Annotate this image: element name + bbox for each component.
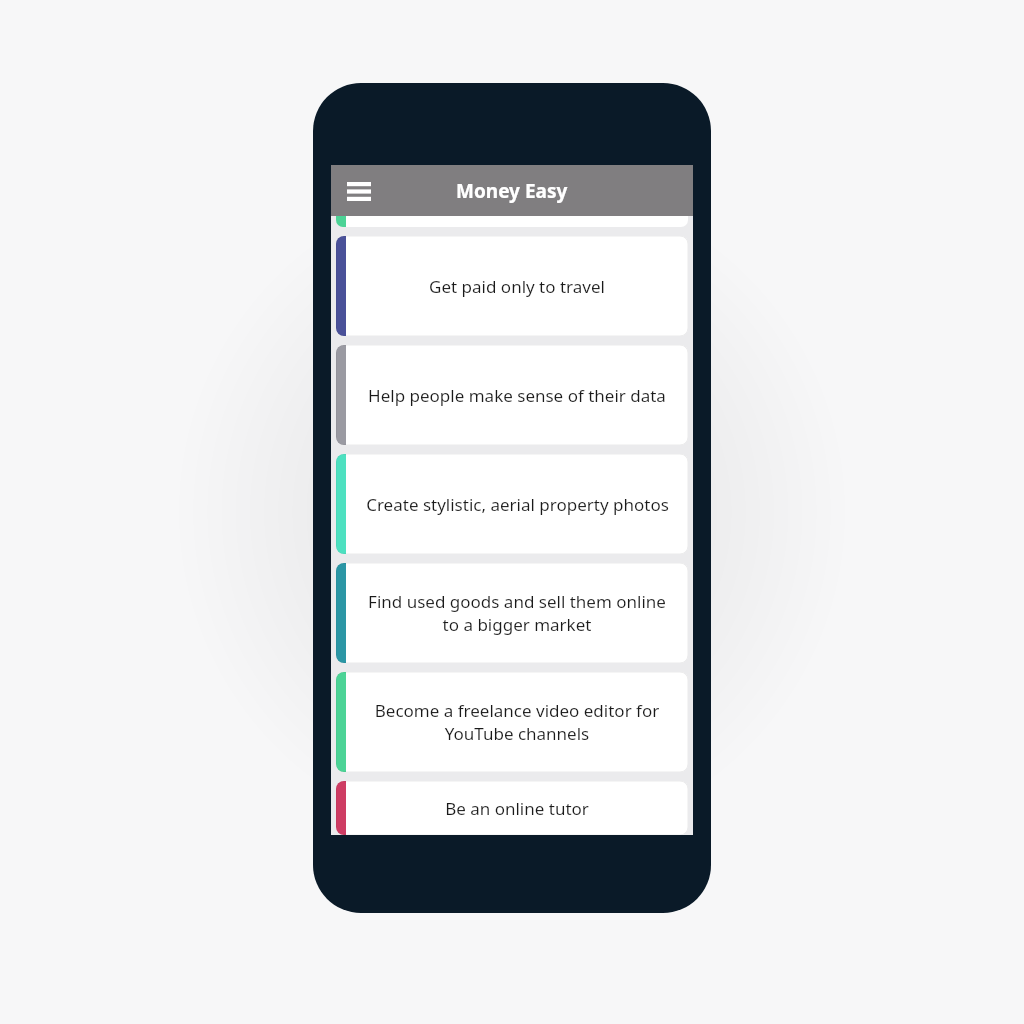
staticText: Create stylistic, aerial property photos [366, 493, 669, 516]
button[interactable]: Get paid only to travel [336, 236, 688, 336]
staticText: Become a freelance video editor for YouT… [358, 699, 676, 745]
button[interactable]: Open navigation menu [339, 171, 379, 211]
staticText: Be an online tutor [445, 797, 589, 820]
button[interactable]: Find used goods and sell them online to … [336, 563, 688, 663]
staticText: Find used goods and sell them online to … [358, 590, 676, 636]
button[interactable]: Create stylistic, aerial property photos [336, 454, 688, 554]
staticText: Help people make sense of their data [368, 384, 666, 407]
button[interactable]: Be an online tutor [336, 781, 688, 835]
button[interactable]: Become a freelance video editor for YouT… [336, 672, 688, 772]
staticText: Money Easy [456, 178, 568, 204]
button[interactable]: Help people make sense of their data [336, 345, 688, 445]
staticText: Get paid only to travel [429, 275, 605, 298]
button[interactable] [336, 216, 688, 227]
